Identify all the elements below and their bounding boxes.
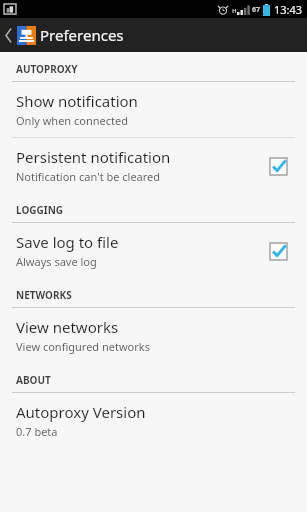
staticText: View networks [16,317,119,337]
staticText: ABOUT [16,373,51,387]
button[interactable]: Toggle setting [263,236,293,266]
button[interactable]: Save log to file [0,223,307,278]
staticText: LOGGING [16,203,64,217]
staticText: NETWORKS [16,288,72,302]
button[interactable]: View networks [0,308,307,363]
staticText: Persistent notification [16,147,171,167]
button[interactable]: Show notification [0,82,307,137]
staticText: 67 [252,5,261,15]
button[interactable]: Autoproxy Version [0,393,307,448]
button[interactable]: Toggle setting [263,151,293,181]
staticText: Autoproxy Version [16,402,146,422]
staticText: 13:43 [274,2,303,17]
staticText: Preferences [40,25,124,45]
staticText: H [232,7,237,15]
staticText: 0.7 beta [16,424,58,439]
staticText: AUTOPROXY [16,62,78,76]
staticText: Always save log [16,254,97,269]
button[interactable]: Persistent notification [0,138,307,193]
staticText: Show notification [16,91,138,111]
button[interactable]: Navigate up [0,22,42,49]
staticText: View configured networks [16,339,150,354]
staticText: Only when connected [16,113,128,128]
staticText: Save log to file [16,232,119,252]
staticText: Notification can't be cleared [16,169,161,184]
